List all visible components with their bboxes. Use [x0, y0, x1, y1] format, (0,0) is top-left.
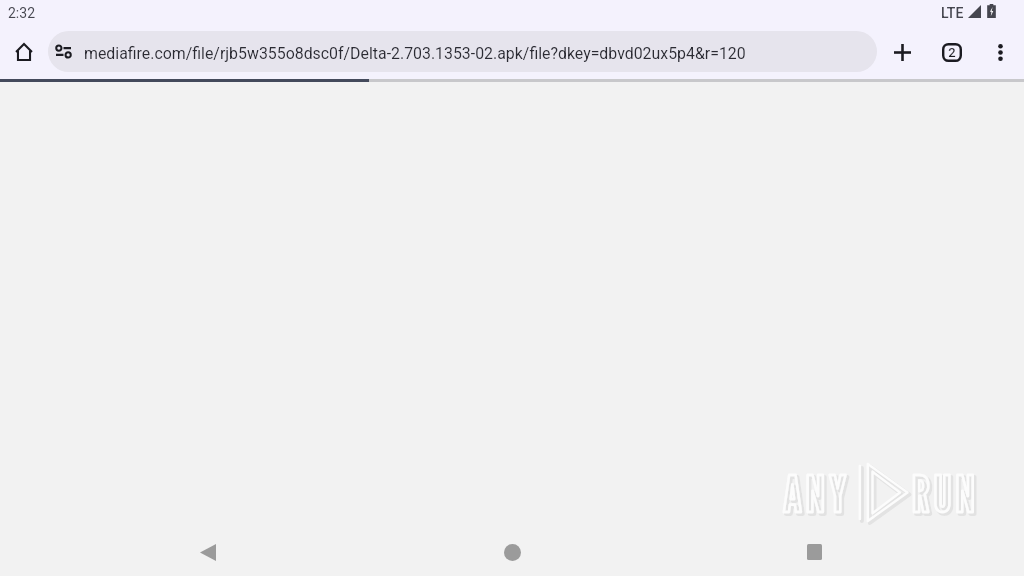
staticText: 2:32 — [8, 5, 35, 21]
button[interactable]: Back — [186, 530, 230, 574]
button[interactable]: New tab — [880, 30, 924, 74]
button[interactable]: mediafire.com/file/rjb5w355o8dsc0f/Delta… — [48, 31, 877, 72]
staticText: 2 — [948, 45, 956, 60]
button[interactable]: Home — [2, 30, 46, 74]
button[interactable]: Tabs — [930, 30, 974, 74]
staticText: ANY — [783, 464, 851, 524]
button[interactable]: Recent apps — [792, 530, 836, 574]
staticText: LTE — [941, 5, 964, 21]
button[interactable]: More options — [978, 30, 1022, 74]
staticText: mediafire.com/file/rjb5w355o8dsc0f/Delta… — [84, 44, 746, 63]
staticText: RUN — [914, 466, 981, 526]
staticText: RUN — [912, 464, 979, 524]
button[interactable]: Home — [490, 530, 534, 574]
staticText: ANY — [785, 466, 853, 526]
